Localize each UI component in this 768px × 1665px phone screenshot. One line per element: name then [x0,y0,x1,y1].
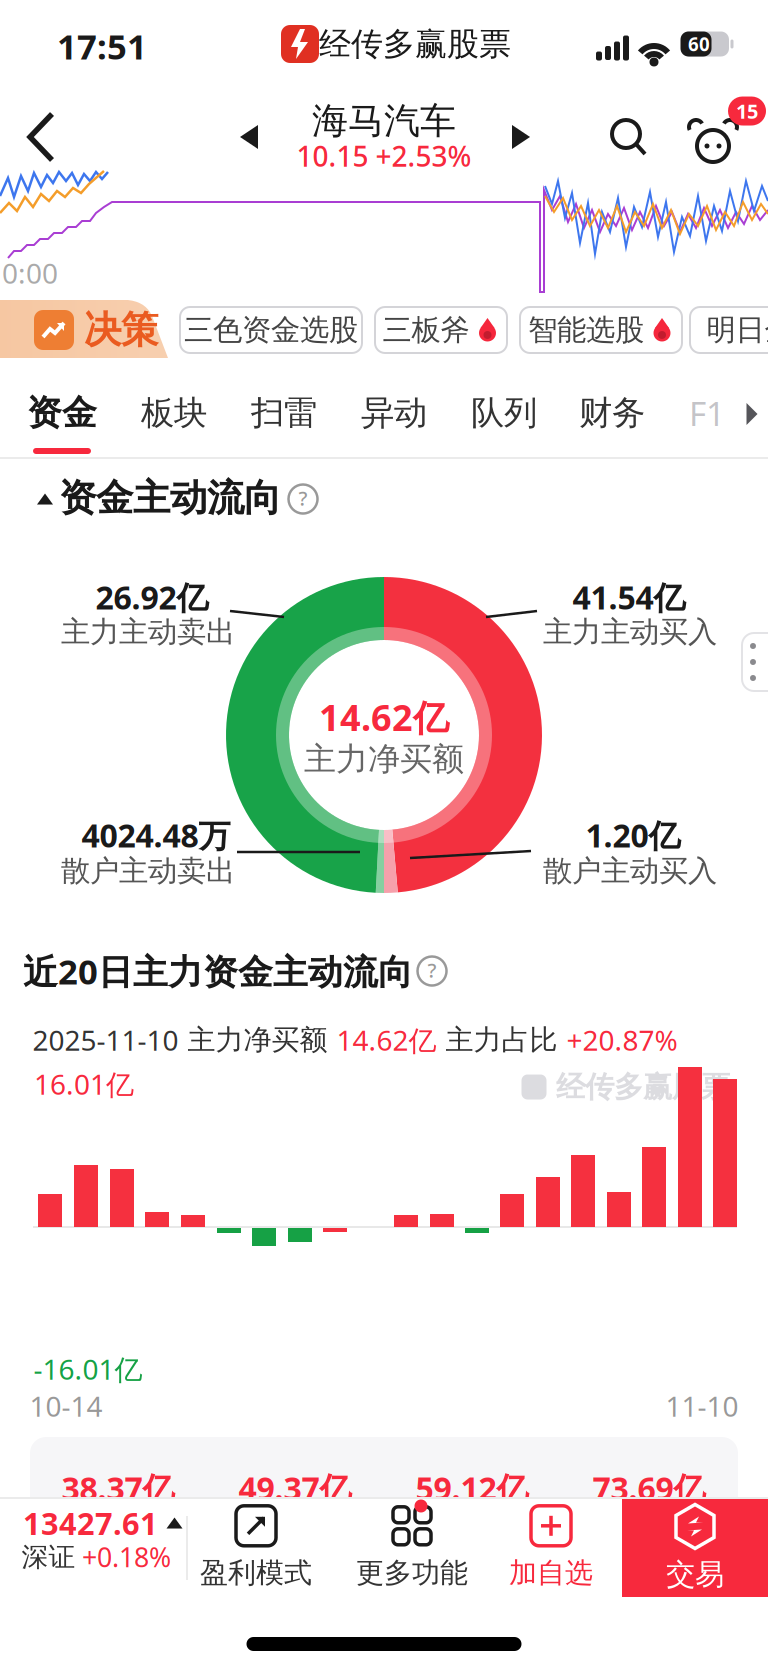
button[interactable]: 三板斧 [375,307,507,353]
button[interactable]: 明日金 [690,307,768,353]
staticText: +20.87% [566,1021,677,1059]
staticText: 4024.48万 [81,814,230,856]
staticText: 38.37亿 [61,1467,174,1509]
button[interactable]: 上一只 [240,125,258,149]
staticText: 队列 [471,392,537,433]
button[interactable]: F1 [677,387,737,439]
button[interactable]: 三色资金选股 [180,307,362,353]
button[interactable]: 资金 [17,387,107,439]
staticText: 三色资金选股 [184,312,358,348]
staticText: 散户主动买入 [543,853,717,889]
staticText: 14.62亿 [336,1021,436,1059]
button[interactable]: 板块 [129,387,219,439]
staticText: 近20日主力资金主动流向 [23,948,413,994]
button[interactable]: 财务 [567,387,657,439]
button[interactable]: 搜索 [608,116,650,158]
staticText: 散户主动卖出 [61,853,235,889]
staticText: 资金主动流向 [59,475,281,521]
staticText: 59.12亿 [415,1467,528,1509]
button[interactable]: 返回 [28,114,58,160]
button[interactable]: 更多功能 [356,1504,468,1590]
button[interactable]: 客服消息 [689,118,737,164]
staticText: 16.01亿 [34,1065,134,1103]
staticText: 10-14 [29,1387,102,1425]
staticText: 财务 [579,392,645,433]
button[interactable]: 加自选 [509,1504,593,1590]
staticText: 14.62亿 [319,693,449,741]
staticText: 73.69亿 [592,1467,705,1509]
staticText: 资金 [27,392,97,434]
staticText: 60 [688,32,710,56]
staticText: 10.15 +2.53% [296,137,471,175]
staticText: 49.37亿 [238,1467,351,1509]
button[interactable]: 队列 [459,387,549,439]
staticText: 主力主动卖出 [61,614,235,650]
staticText: 盈利模式 [200,1556,312,1590]
staticText: 主力净买额 [304,739,464,779]
staticText: 更多功能 [356,1556,468,1590]
staticText: 17:51 [57,23,147,69]
staticText: 0:00 [2,254,58,292]
button[interactable]: 更多操作 [742,633,768,691]
button[interactable]: 13427.61 [12,1501,187,1591]
staticText: 经传多赢股票 [319,24,511,64]
button[interactable]: 决策 [34,307,158,353]
staticText: F1 [689,391,725,435]
staticText: 智能选股 [528,312,644,348]
button[interactable]: 更多栏目 [746,403,757,425]
button[interactable]: 说明 [417,956,447,986]
staticText: -16.01亿 [33,1350,142,1388]
button[interactable]: 说明 [288,484,318,514]
staticText: 板块 [141,392,207,433]
staticText: 明日金 [706,312,768,348]
staticText: 15 [736,98,758,124]
button[interactable]: 盈利模式 [200,1504,312,1590]
staticText: 加自选 [509,1556,593,1590]
staticText: 26.92亿 [95,576,208,618]
staticText: 41.54亿 [572,576,685,618]
button[interactable]: 下一只 [512,125,530,149]
staticText: 主力主动买入 [543,614,717,650]
staticText: 主力占比 [445,1023,557,1057]
staticText: +0.18% [82,1539,171,1575]
button[interactable]: 扫雷 [239,387,329,439]
staticText: 1.20亿 [585,814,680,856]
staticText: 13427.61 [23,1503,158,1543]
button[interactable]: 智能选股 [520,307,682,353]
staticText: 经传多赢股票 [556,1069,730,1105]
staticText: 2025-11-10 [32,1021,178,1059]
staticText: 海马汽车 [312,99,456,143]
staticText: ? [298,485,307,511]
staticText: 异动 [361,392,427,433]
button[interactable]: 异动 [349,387,439,439]
staticText: 11-10 [665,1387,738,1425]
staticText: 三板斧 [382,312,469,348]
staticText: ? [427,957,436,983]
staticText: 深证 [21,1541,75,1573]
staticText: 扫雷 [251,392,317,433]
staticText: 决策 [84,307,158,353]
staticText: 交易 [666,1556,724,1592]
staticText: 主力净买额 [187,1023,327,1057]
button[interactable]: 交易 [622,1499,768,1597]
